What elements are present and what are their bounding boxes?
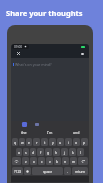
button[interactable]: I'm	[37, 128, 63, 137]
button[interactable]: ?123	[12, 167, 23, 175]
button[interactable]: the	[11, 128, 37, 137]
button[interactable]: w	[19, 138, 25, 146]
button[interactable]: k	[69, 148, 76, 156]
staticText: Share your thoughts	[6, 8, 83, 18]
staticText: the	[21, 130, 27, 135]
staticText: r	[36, 140, 38, 145]
staticText: s	[25, 150, 27, 155]
button[interactable]: and	[63, 128, 89, 137]
staticText: n	[64, 159, 67, 164]
button[interactable]: r	[33, 138, 40, 146]
staticText: d	[32, 150, 35, 155]
button[interactable]: d	[30, 148, 36, 156]
staticText: u	[59, 140, 62, 145]
staticText: f	[40, 150, 42, 155]
button[interactable]: v	[46, 157, 53, 165]
staticText: i	[68, 140, 69, 145]
button[interactable]: f	[37, 148, 44, 156]
button[interactable]: g	[45, 148, 52, 156]
staticText: c	[41, 159, 43, 164]
staticText: l	[80, 150, 81, 155]
staticText: q	[14, 140, 17, 145]
button[interactable]: Close	[17, 52, 20, 55]
button[interactable]	[12, 157, 21, 165]
staticText: What's on your mind?	[15, 62, 52, 67]
button[interactable]: a	[16, 148, 22, 156]
staticText: ?123	[14, 169, 22, 174]
button[interactable]: p	[81, 138, 88, 146]
button[interactable]: n	[62, 157, 69, 165]
staticText: o	[75, 140, 78, 145]
button[interactable]: m	[70, 157, 77, 165]
staticText: j	[64, 150, 65, 155]
staticText: g	[47, 150, 50, 155]
staticText: v	[49, 159, 51, 164]
button[interactable]: return	[72, 167, 88, 175]
staticText: z	[25, 159, 27, 164]
staticText: y	[52, 140, 54, 145]
staticText: I'm	[47, 130, 53, 135]
button[interactable]: l	[77, 148, 84, 156]
button[interactable]: .	[64, 167, 71, 175]
button[interactable]: u	[57, 138, 64, 146]
button[interactable]: s	[23, 148, 29, 156]
button[interactable]	[24, 167, 31, 175]
staticText: t	[44, 140, 46, 145]
staticText: h	[55, 150, 58, 155]
button[interactable]: j	[61, 148, 68, 156]
staticText: 09:00	[14, 45, 23, 49]
staticText: b	[56, 159, 59, 164]
staticText: e	[28, 140, 30, 145]
button[interactable]: t	[41, 138, 48, 146]
staticText: m	[72, 159, 76, 164]
staticText: a	[18, 150, 20, 155]
staticText: k	[72, 150, 74, 155]
staticText: and	[73, 130, 80, 135]
button[interactable]: q	[12, 138, 18, 146]
button[interactable]: e	[26, 138, 32, 146]
button[interactable]: Post	[81, 53, 84, 55]
button[interactable]: space	[32, 167, 63, 175]
button[interactable]	[78, 157, 88, 165]
button[interactable]: x	[30, 157, 37, 165]
button[interactable]: c	[38, 157, 45, 165]
button[interactable]: y	[49, 138, 56, 146]
button[interactable]: Google	[22, 122, 27, 127]
staticText: p	[83, 140, 86, 145]
button[interactable]: o	[73, 138, 80, 146]
button[interactable]: GIF	[35, 123, 39, 126]
staticText: return	[75, 169, 86, 174]
button[interactable]: z	[22, 157, 29, 165]
button[interactable]: i	[65, 138, 72, 146]
staticText: .	[67, 169, 68, 174]
staticText: x	[33, 159, 35, 164]
staticText: space	[43, 169, 53, 174]
button[interactable]: h	[53, 148, 60, 156]
staticText: w	[21, 140, 24, 145]
button[interactable]: b	[54, 157, 61, 165]
